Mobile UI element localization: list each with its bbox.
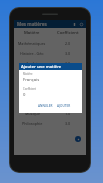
staticText: Philosophie — [22, 121, 43, 126]
staticText: Espagnol — [24, 91, 40, 96]
button[interactable]: Philosophie — [14, 118, 86, 128]
button[interactable]: AJOUTER — [56, 103, 72, 109]
staticText: Anglais — [26, 61, 39, 66]
staticText: 2.0 — [65, 61, 71, 66]
button[interactable]: Histoire - Géo — [14, 48, 86, 58]
staticText: 3.0 — [65, 121, 71, 126]
staticText: 3.0 — [65, 51, 71, 56]
staticText: Matière — [23, 72, 33, 76]
staticText: Mes matières — [17, 21, 47, 27]
button[interactable]: ANNULER — [37, 103, 54, 109]
staticText: Mathématiques — [18, 41, 46, 46]
button[interactable]: Actualiser — [78, 21, 85, 28]
button[interactable]: Anglais — [14, 58, 86, 68]
button[interactable]: Enregistrer — [71, 21, 78, 28]
button[interactable]: Sport — [14, 98, 86, 108]
staticText: ANNULER — [38, 104, 53, 108]
button[interactable]: SVT — [14, 68, 86, 78]
button[interactable]: Ajouter une matière — [75, 136, 81, 142]
staticText: SVT — [29, 71, 36, 76]
staticText: Musique — [25, 111, 40, 116]
staticText: AJOUTER — [57, 104, 71, 108]
staticText: Ajouter une matière — [21, 64, 62, 70]
button[interactable]: Musique — [14, 108, 86, 118]
staticText: Français — [23, 77, 40, 83]
staticText: Matière — [24, 30, 40, 36]
staticText: 2.0 — [65, 41, 71, 46]
button[interactable]: Physique — [14, 78, 86, 88]
staticText: Physique — [24, 81, 40, 86]
staticText: Coefficient — [23, 87, 37, 91]
staticText: 1.0 — [65, 111, 71, 116]
staticText: 1.0 — [65, 101, 71, 106]
staticText: Histoire - Géo — [20, 51, 44, 56]
staticText: 0 — [23, 92, 26, 98]
button[interactable]: Espagnol — [14, 88, 86, 98]
button[interactable]: Mathématiques — [14, 38, 86, 48]
staticText: Coefficient — [57, 30, 79, 36]
